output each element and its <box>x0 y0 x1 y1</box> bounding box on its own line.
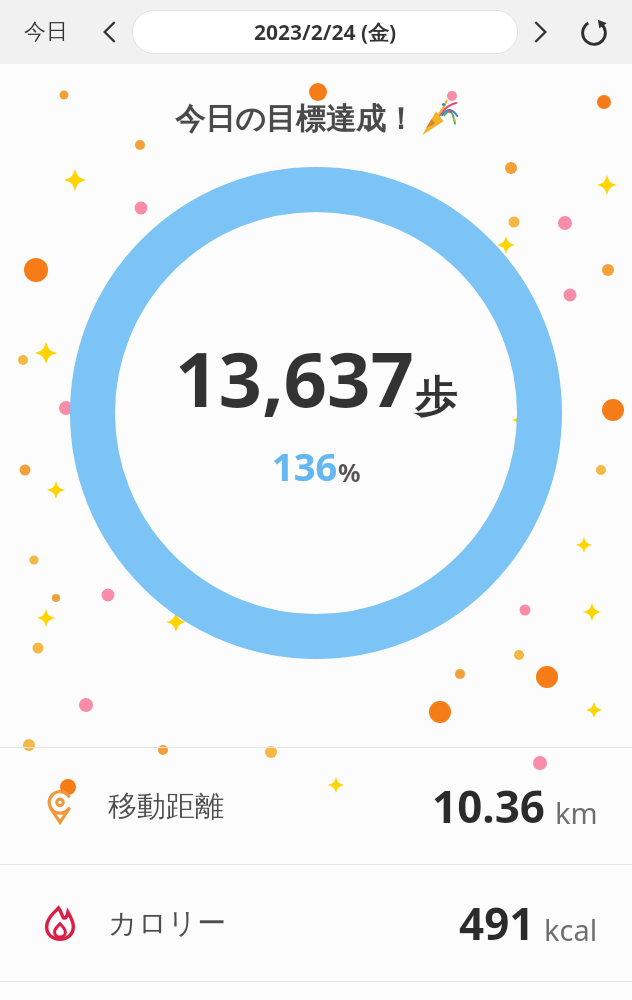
button[interactable]: Next day <box>518 10 562 54</box>
staticText: km <box>555 793 598 832</box>
button[interactable]: Refresh <box>570 8 618 56</box>
staticText: 移動距離 <box>108 788 224 825</box>
staticText: 2023/2/24 (金) <box>254 18 397 47</box>
staticText: 歩 <box>415 371 457 424</box>
staticText: 10.36 <box>432 776 546 836</box>
button[interactable]: 今日 <box>10 10 82 54</box>
button[interactable]: カロリー <box>0 865 632 981</box>
staticText: 136 <box>272 440 338 492</box>
staticText: 13,637 <box>175 326 415 430</box>
staticText: 今日 <box>24 18 68 46</box>
button[interactable]: 移動距離 <box>0 748 632 864</box>
button[interactable]: Previous day <box>88 10 132 54</box>
staticText: kcal <box>544 910 598 949</box>
staticText: 491 <box>459 893 535 953</box>
staticText: カロリー <box>108 905 227 942</box>
button[interactable]: 2023/2/24 (金) <box>132 10 518 54</box>
staticText: 今日の目標達成！ <box>175 100 416 138</box>
staticText: % <box>338 455 361 489</box>
